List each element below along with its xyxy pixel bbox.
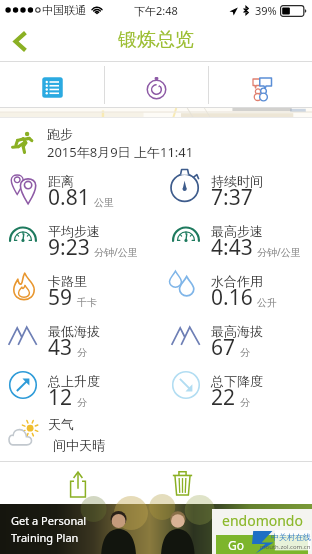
- button[interactable]: 平均步速: [0, 213, 156, 263]
- staticText: Go: [228, 537, 244, 553]
- staticText: 分钟/公里: [257, 245, 301, 259]
- staticText: 锻炼总览: [118, 28, 194, 52]
- staticText: 间中天晴: [53, 437, 105, 453]
- staticText: 0.81: [48, 183, 90, 212]
- staticText: 4:43: [211, 233, 253, 262]
- staticText: 分钟/公里: [94, 245, 138, 259]
- button[interactable]: 持续时间: [156, 163, 312, 213]
- staticText: 总上升度: [48, 373, 100, 389]
- button[interactable]: Friends: [209, 62, 312, 108]
- staticText: 43: [48, 333, 73, 362]
- staticText: 距离: [48, 173, 74, 189]
- staticText: 中国联通: [42, 3, 86, 17]
- button[interactable]: 距离: [0, 163, 156, 213]
- button[interactable]: 卡路里: [0, 263, 156, 313]
- staticText: 2015年8月9日 上午11:41: [47, 143, 194, 161]
- button[interactable]: 最高步速: [156, 213, 312, 263]
- staticText: 最高海拔: [211, 323, 263, 339]
- staticText: 分: [77, 346, 87, 359]
- staticText: 最低海拔: [48, 323, 100, 339]
- staticText: 分: [240, 396, 250, 409]
- staticText: 59: [48, 283, 73, 312]
- staticText: 67: [211, 333, 236, 362]
- staticText: 12: [48, 383, 73, 412]
- button[interactable]: Back: [0, 20, 40, 62]
- button[interactable]: 总上升度: [0, 363, 156, 413]
- button[interactable]: 天气: [0, 413, 312, 461]
- staticText: 水合作用: [211, 273, 263, 289]
- staticText: 中关村在线: [271, 532, 311, 542]
- staticText: Get a Personal: [11, 513, 87, 528]
- staticText: 持续时间: [211, 173, 263, 189]
- button[interactable]: 跑步: [0, 118, 312, 163]
- staticText: 千卡: [77, 296, 97, 309]
- staticText: 分: [240, 346, 250, 359]
- staticText: 0.16: [211, 283, 253, 312]
- staticText: 跑步: [47, 126, 73, 142]
- staticText: 平均步速: [48, 223, 100, 239]
- staticText: 公升: [257, 296, 277, 309]
- button[interactable]: Delete: [156, 462, 208, 504]
- staticText: 卡路里: [48, 273, 87, 289]
- button[interactable]: 最高海拔: [156, 313, 312, 363]
- staticText: 7:37: [211, 183, 253, 212]
- staticText: 天气: [48, 416, 74, 432]
- staticText: Training Plan: [11, 530, 79, 545]
- staticText: 分: [77, 396, 87, 409]
- button[interactable]: Share: [52, 462, 104, 504]
- staticText: 下午2:48: [134, 3, 178, 18]
- button[interactable]: Stopwatch: [105, 62, 208, 108]
- button[interactable]: 水合作用: [156, 263, 312, 313]
- staticText: 最高步速: [211, 223, 263, 239]
- staticText: 39%: [255, 3, 277, 18]
- button[interactable]: Get a Personal: [0, 504, 312, 554]
- staticText: 公里: [94, 196, 114, 209]
- button[interactable]: 最低海拔: [0, 313, 156, 363]
- button[interactable]: Workout list: [0, 62, 104, 108]
- staticText: mouth.zol.com.cn: [260, 543, 311, 551]
- staticText: 9:23: [48, 233, 90, 262]
- staticText: 总下降度: [211, 373, 263, 389]
- button[interactable]: endomondo: [212, 509, 312, 554]
- staticText: 22: [211, 383, 236, 412]
- staticText: endomondo: [222, 511, 303, 530]
- button[interactable]: 总下降度: [156, 363, 312, 413]
